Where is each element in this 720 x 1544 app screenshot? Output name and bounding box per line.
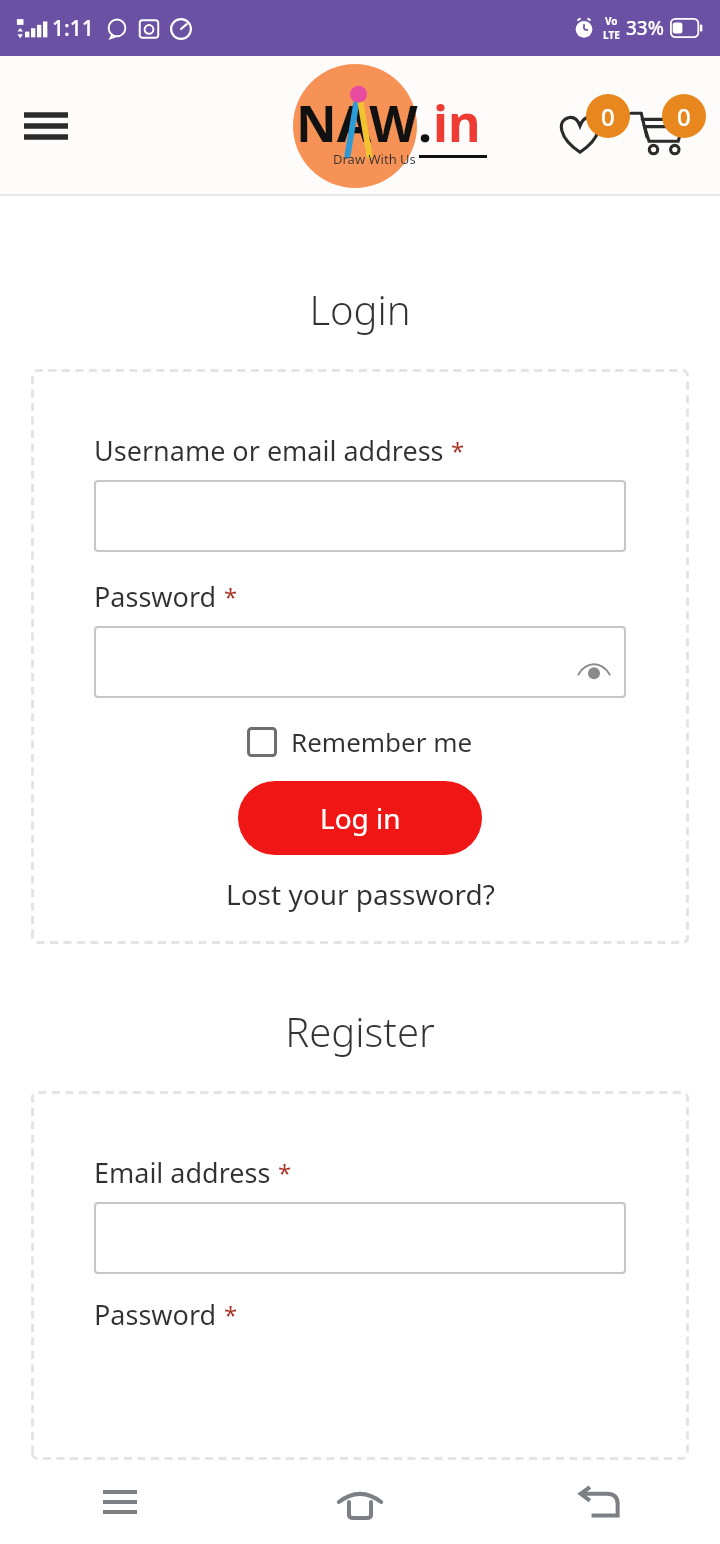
staticText: . bbox=[418, 89, 433, 157]
staticText: 0 bbox=[601, 100, 615, 133]
staticText: * bbox=[451, 434, 465, 467]
button[interactable]: Show password bbox=[94, 626, 626, 698]
button[interactable]: Cart, 0 items bbox=[630, 94, 706, 158]
button[interactable]: NAW.in home bbox=[262, 64, 447, 188]
button[interactable]: Lost your password? bbox=[226, 875, 495, 913]
staticText: 0 bbox=[677, 100, 691, 133]
staticText: * bbox=[224, 580, 238, 613]
staticText: Password bbox=[94, 1296, 217, 1333]
button[interactable] bbox=[94, 1202, 626, 1274]
staticText: Login bbox=[0, 282, 720, 336]
staticText: NAW bbox=[296, 89, 418, 157]
staticText: Email address bbox=[94, 1154, 271, 1191]
staticText: Remember me bbox=[291, 724, 473, 759]
staticText: * bbox=[278, 1156, 292, 1189]
staticText: 1:11 bbox=[52, 14, 94, 43]
staticText: 33% bbox=[626, 15, 664, 41]
staticText: LTE bbox=[603, 28, 620, 42]
button[interactable]: Menu bbox=[18, 98, 74, 154]
button[interactable]: Log in bbox=[238, 781, 482, 855]
staticText: Register bbox=[0, 1004, 720, 1058]
button[interactable]: Show password bbox=[574, 650, 614, 690]
staticText: Username or email address bbox=[94, 432, 444, 469]
staticText: in bbox=[433, 89, 481, 157]
staticText: Vo bbox=[605, 14, 618, 28]
button[interactable]: Back bbox=[568, 1470, 632, 1534]
staticText: Log in bbox=[320, 799, 401, 837]
staticText: * bbox=[224, 1298, 238, 1331]
button[interactable]: Recents bbox=[88, 1470, 152, 1534]
button[interactable]: Home bbox=[328, 1470, 392, 1534]
button[interactable]: Wishlist, 0 items bbox=[556, 94, 630, 158]
staticText: Password bbox=[94, 578, 217, 615]
button[interactable]: Remember me bbox=[94, 724, 626, 759]
staticText: Draw With Us bbox=[333, 150, 416, 168]
button[interactable] bbox=[94, 480, 626, 552]
